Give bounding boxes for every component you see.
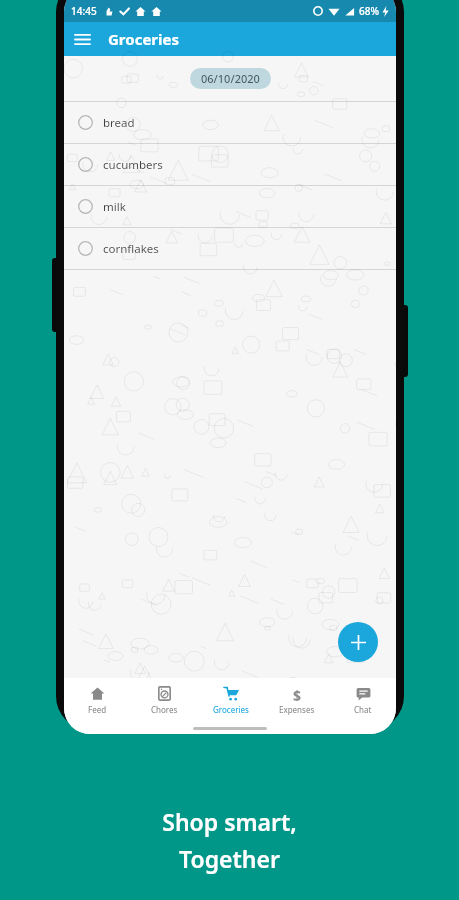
button[interactable]: Groceries [198, 678, 264, 722]
button[interactable]: cornflakes [64, 228, 396, 269]
button[interactable]: milk [64, 186, 396, 227]
staticText: cucumbers [103, 157, 163, 173]
staticText: milk [103, 199, 126, 215]
button[interactable]: Open navigation menu [64, 22, 100, 56]
staticText: Shop smart, [162, 806, 297, 837]
staticText: bread [103, 115, 135, 131]
button[interactable]: Feed [64, 678, 131, 722]
staticText: cornflakes [103, 241, 159, 257]
staticText: Chores [151, 704, 178, 715]
staticText: 06/10/2020 [201, 71, 260, 86]
staticText: Groceries [108, 29, 180, 49]
button[interactable]: 06/10/2020 [190, 68, 271, 89]
staticText: $ [293, 686, 302, 701]
button[interactable]: cucumbers [64, 144, 396, 185]
staticText: Groceries [213, 704, 249, 715]
staticText: Feed [88, 704, 107, 715]
button[interactable]: Chores [131, 678, 198, 722]
staticText: Together [179, 843, 280, 874]
button[interactable]: Chat [330, 678, 396, 722]
staticText: Chat [354, 704, 372, 715]
staticText: 14:45 [71, 4, 97, 18]
staticText: Expenses [279, 704, 315, 715]
button[interactable]: $ [264, 678, 330, 722]
button[interactable]: bread [64, 102, 396, 143]
button[interactable]: Add grocery item [338, 622, 378, 662]
staticText: 68% [359, 4, 379, 18]
